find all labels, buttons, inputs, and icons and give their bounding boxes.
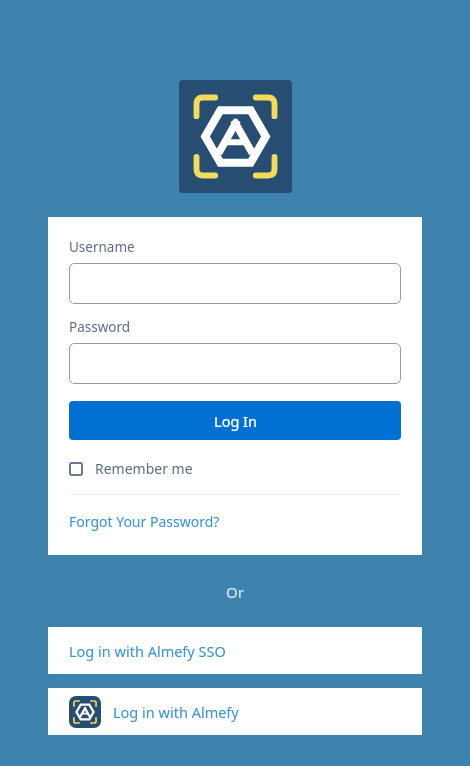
button[interactable]: Log in with Almefy SSO [48, 627, 422, 674]
button[interactable]: Log in with Almefy [48, 688, 422, 735]
staticText: Log In [214, 411, 257, 431]
button[interactable] [69, 263, 401, 304]
button[interactable]: Forgot Your Password? [69, 512, 220, 531]
staticText: Log in with Almefy [113, 702, 239, 722]
staticText: Log in with Almefy SSO [69, 641, 226, 661]
staticText: Password [69, 318, 131, 336]
staticText: Forgot Your Password? [69, 512, 220, 531]
button[interactable] [69, 343, 401, 384]
staticText: Or [226, 582, 244, 602]
button[interactable]: Log In [69, 401, 401, 440]
staticText: Remember me [95, 459, 193, 478]
button[interactable]: Remember me [69, 459, 401, 478]
staticText: Username [69, 238, 135, 256]
